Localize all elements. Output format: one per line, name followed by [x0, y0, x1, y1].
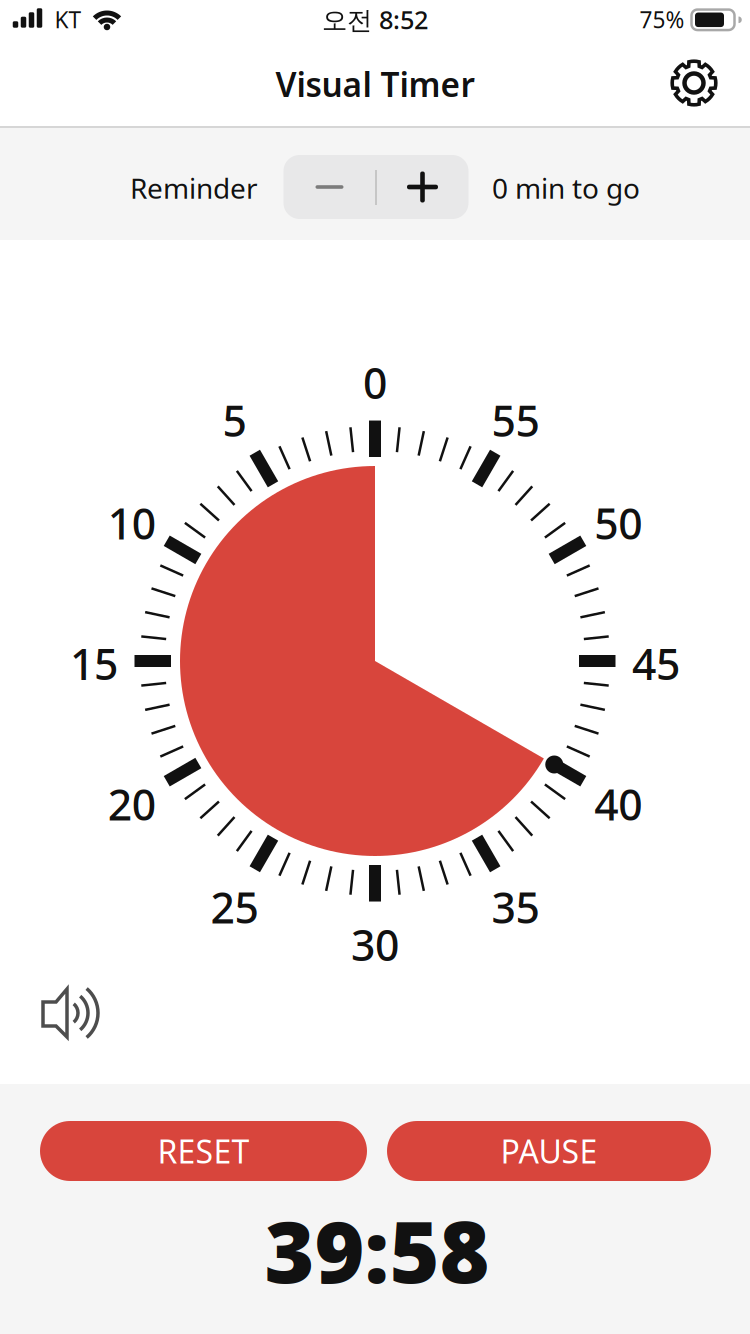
- staticText: 20: [108, 776, 156, 832]
- button[interactable]: [40, 986, 102, 1040]
- staticText: 39:58: [264, 1193, 489, 1307]
- staticText: 오전 8:52: [322, 3, 428, 36]
- staticText: 50: [594, 495, 642, 551]
- button[interactable]: [664, 53, 724, 113]
- button[interactable]: PAUSE: [387, 1121, 711, 1181]
- staticText: 30: [351, 916, 399, 973]
- staticText: 0 min to go: [492, 169, 640, 207]
- staticText: Visual Timer: [275, 62, 474, 106]
- button[interactable]: [283, 155, 375, 219]
- staticText: 10: [108, 495, 156, 551]
- staticText: PAUSE: [500, 1130, 597, 1172]
- staticText: 35: [491, 878, 539, 935]
- staticText: 75%: [639, 4, 684, 34]
- staticText: 25: [210, 878, 258, 935]
- staticText: 55: [491, 392, 539, 448]
- staticText: RESET: [157, 1130, 249, 1172]
- staticText: 15: [70, 635, 118, 692]
- staticText: 0: [363, 354, 387, 411]
- staticText: 40: [594, 776, 642, 832]
- button[interactable]: RESET: [40, 1121, 367, 1181]
- staticText: 5: [222, 392, 246, 448]
- staticText: 45: [632, 635, 680, 692]
- staticText: KT: [54, 4, 81, 34]
- staticText: Reminder: [130, 169, 258, 207]
- button[interactable]: [376, 155, 468, 219]
